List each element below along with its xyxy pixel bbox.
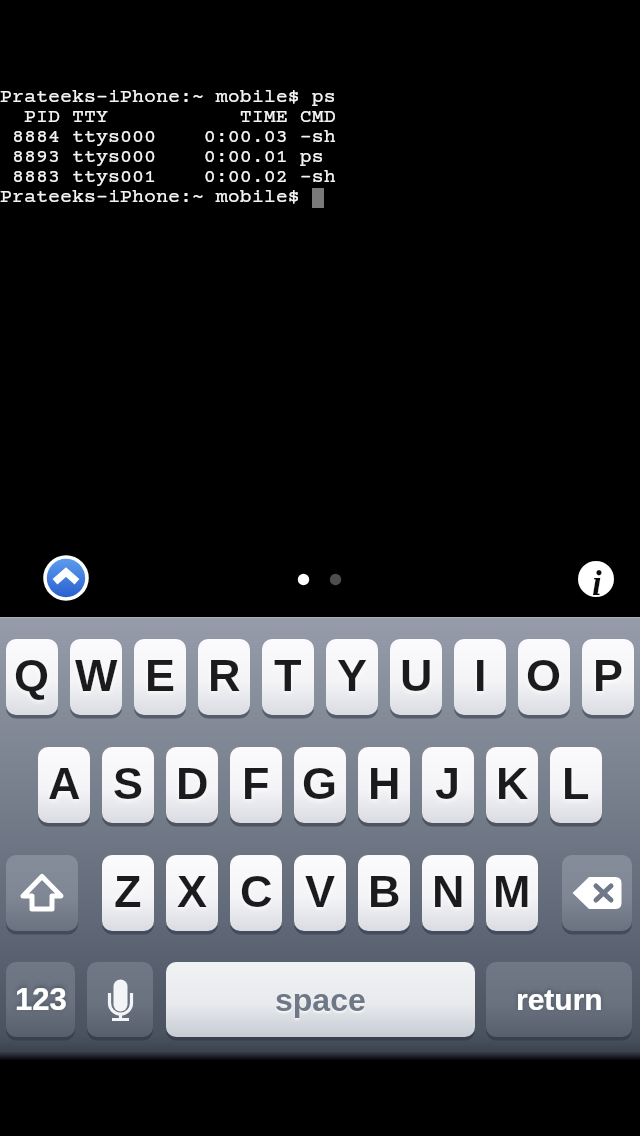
staticText: L — [562, 758, 590, 808]
staticText: M — [493, 866, 531, 916]
button[interactable]: E — [134, 639, 186, 715]
button[interactable]: N — [422, 855, 474, 931]
staticText: O — [526, 650, 562, 700]
staticText: N — [432, 866, 465, 916]
button[interactable]: space — [166, 962, 475, 1037]
staticText: PID TTY TIME CMD — [0, 106, 336, 128]
staticText: space — [275, 982, 366, 1018]
button[interactable]: M — [486, 855, 538, 931]
button[interactable] — [43, 555, 89, 601]
button[interactable]: A — [38, 747, 90, 823]
staticText: I — [474, 650, 487, 700]
staticText: i — [592, 564, 602, 603]
button[interactable]: P — [582, 639, 634, 715]
button[interactable]: Z — [102, 855, 154, 931]
button[interactable]: R — [198, 639, 250, 715]
button[interactable] — [6, 855, 78, 931]
staticText: H — [368, 758, 401, 808]
staticText: C — [240, 866, 273, 916]
staticText: R — [208, 650, 241, 700]
staticText: F — [242, 758, 270, 808]
button[interactable]: B — [358, 855, 410, 931]
button[interactable]: H — [358, 747, 410, 823]
button[interactable]: G — [294, 747, 346, 823]
staticText: W — [75, 650, 118, 700]
staticText: K — [496, 758, 529, 808]
staticText: Y — [337, 650, 368, 700]
staticText: X — [177, 866, 208, 916]
staticText: 8884 ttys000 0:00.03 -sh — [0, 126, 336, 148]
staticText: D — [176, 758, 209, 808]
staticText: Z — [114, 866, 142, 916]
button[interactable]: T — [262, 639, 314, 715]
button[interactable]: Y — [326, 639, 378, 715]
staticText: 8883 ttys001 0:00.02 -sh — [0, 166, 336, 188]
button[interactable] — [87, 962, 153, 1037]
staticText: 8893 ttys000 0:00.01 ps — [0, 146, 324, 168]
staticText: G — [302, 758, 338, 808]
button[interactable]: Q — [6, 639, 58, 715]
staticText: B — [368, 866, 401, 916]
staticText: E — [145, 650, 176, 700]
button[interactable]: L — [550, 747, 602, 823]
staticText: J — [435, 758, 461, 808]
button[interactable]: C — [230, 855, 282, 931]
button[interactable]: U — [390, 639, 442, 715]
staticText: T — [274, 650, 302, 700]
button[interactable]: O — [518, 639, 570, 715]
button[interactable]: W — [70, 639, 122, 715]
button[interactable]: F — [230, 747, 282, 823]
button[interactable]: X — [166, 855, 218, 931]
button[interactable]: S — [102, 747, 154, 823]
button[interactable]: return — [486, 962, 632, 1037]
staticText: P — [593, 650, 624, 700]
staticText: Q — [14, 650, 50, 700]
staticText: Prateeks-iPhone:~ mobile$ ps — [0, 86, 336, 108]
staticText: return — [516, 983, 603, 1017]
staticText: 123 — [15, 982, 67, 1017]
button[interactable]: V — [294, 855, 346, 931]
button[interactable] — [578, 561, 614, 597]
staticText: Prateeks-iPhone:~ mobile$ — [0, 186, 300, 208]
button[interactable]: D — [166, 747, 218, 823]
button[interactable]: K — [486, 747, 538, 823]
staticText: S — [113, 758, 144, 808]
staticText: V — [305, 866, 336, 916]
staticText: A — [48, 758, 81, 808]
staticText: U — [400, 650, 433, 700]
button[interactable] — [562, 855, 632, 931]
button[interactable]: J — [422, 747, 474, 823]
button[interactable]: I — [454, 639, 506, 715]
button[interactable]: 123 — [6, 962, 75, 1037]
